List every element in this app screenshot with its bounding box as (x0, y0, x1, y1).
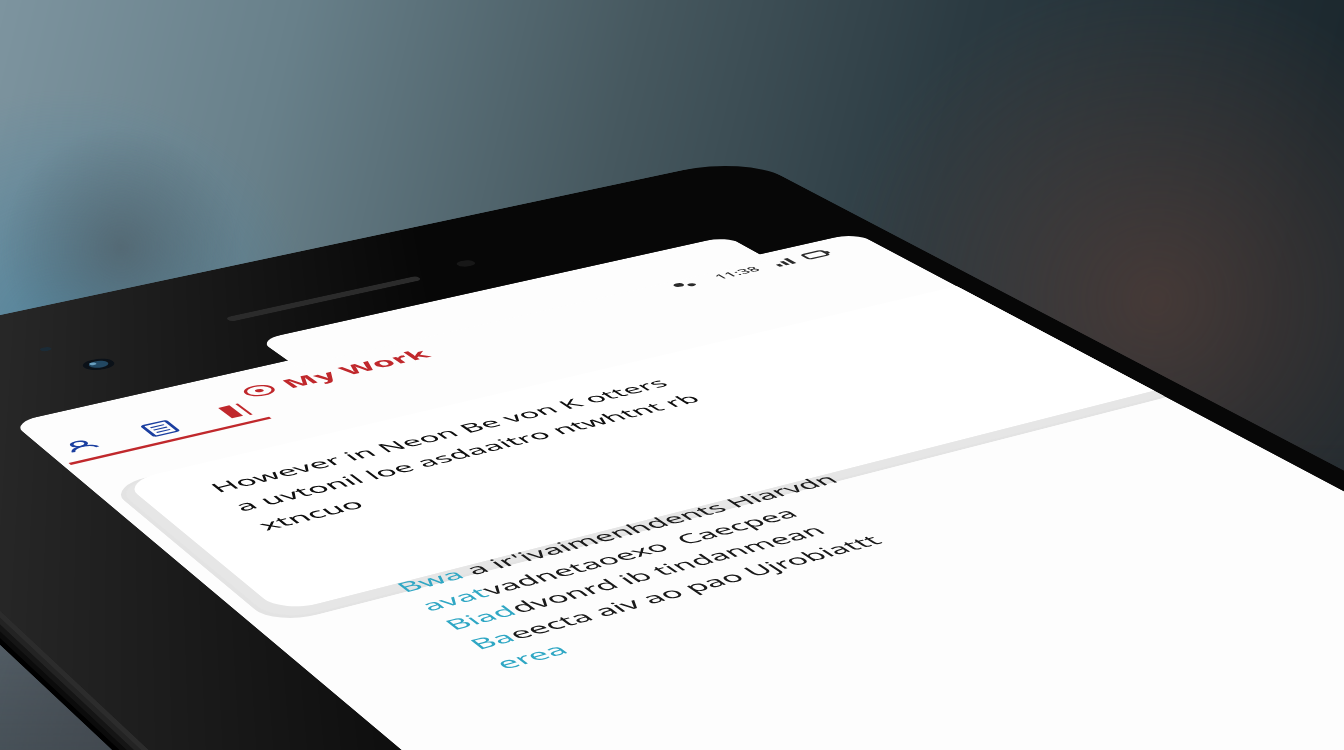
staticText: 11:38 (710, 264, 764, 281)
staticText: My Work (275, 345, 438, 392)
button[interactable]: However in Neon Be von K otters a uvtoni… (122, 286, 1154, 613)
staticText: Bwa (389, 565, 470, 596)
staticText: avat (413, 583, 495, 615)
staticText: Ba (462, 627, 522, 653)
staticText: vadnetaoexo Caecpea (474, 504, 805, 599)
button[interactable]: Tasks (184, 391, 291, 431)
button[interactable]: Contacts (35, 426, 136, 466)
staticText: Biad (437, 601, 524, 634)
staticText: However in Neon Be von K otters a uvtoni… (204, 373, 734, 534)
staticText: a ir'ivaimenhdents Hiarvdn (450, 470, 844, 580)
button[interactable]: My Work (228, 343, 444, 404)
button[interactable]: Notes (107, 408, 214, 449)
staticText: eecta aiv ao pao Ujrobiattt (500, 530, 889, 643)
staticText: erea (487, 639, 575, 673)
staticText: dvonrd ib tindanmean (502, 521, 832, 617)
